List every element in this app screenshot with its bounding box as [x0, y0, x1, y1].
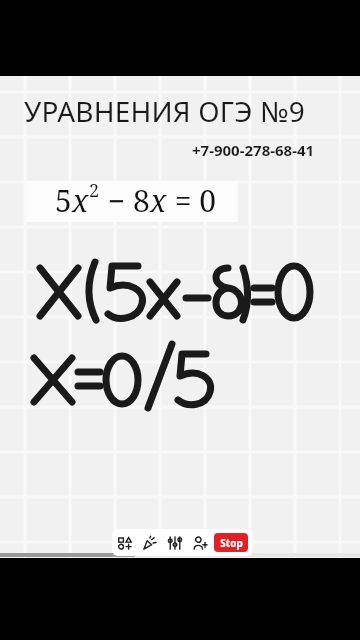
- staticText: Stop: [220, 536, 243, 550]
- staticText: x: [72, 180, 89, 221]
- button[interactable]: Invite participant: [187, 529, 212, 556]
- staticText: 2: [89, 178, 100, 203]
- button[interactable]: Adjust settings: [162, 529, 187, 556]
- staticText: +7-900-278-68-41: [192, 140, 315, 160]
- staticText: x: [150, 180, 167, 221]
- button[interactable]: Stop: [214, 533, 248, 552]
- button[interactable]: Effects: [137, 529, 162, 556]
- staticText: − 8: [100, 180, 150, 221]
- button[interactable]: Add shapes: [112, 529, 137, 556]
- staticText: = 0: [167, 180, 217, 221]
- staticText: УРАВНЕНИЯ ОГЭ №9: [24, 92, 306, 130]
- staticText: 5: [55, 180, 72, 221]
